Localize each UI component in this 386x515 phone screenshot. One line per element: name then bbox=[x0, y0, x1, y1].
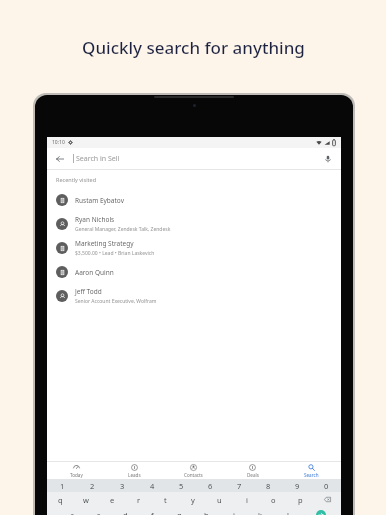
staticText: d bbox=[123, 510, 128, 515]
button[interactable]: Ryan Nichols bbox=[47, 212, 341, 236]
button[interactable]: 8 bbox=[254, 479, 283, 492]
staticText: Deals bbox=[247, 472, 259, 478]
button[interactable]: a bbox=[59, 507, 85, 515]
button[interactable]: t bbox=[152, 492, 179, 507]
button[interactable]: Rustam Eybatov bbox=[47, 188, 341, 212]
staticText: Jeff Todd bbox=[75, 287, 102, 296]
staticText: Contacts bbox=[184, 472, 203, 478]
button[interactable]: g bbox=[166, 507, 193, 515]
staticText: o bbox=[271, 495, 276, 505]
staticText: j bbox=[233, 510, 235, 515]
button[interactable]: w bbox=[73, 492, 99, 507]
staticText: 5 bbox=[179, 481, 184, 491]
staticText: Search in Sell bbox=[76, 154, 120, 164]
staticText: r bbox=[137, 495, 141, 505]
staticText: General Manager, Zendesk Talk, Zendesk bbox=[75, 226, 171, 233]
button[interactable]: Backspace bbox=[314, 492, 341, 507]
button[interactable]: s bbox=[85, 507, 112, 515]
staticText: Quickly search for anything bbox=[82, 36, 305, 59]
button[interactable]: Marketing Strategy bbox=[47, 236, 341, 260]
staticText: $3,500.00 • Lead • Brian Laskevich bbox=[75, 250, 155, 257]
button[interactable]: e bbox=[99, 492, 125, 507]
staticText: Ryan Nichols bbox=[75, 215, 115, 224]
button[interactable]: 9 bbox=[283, 479, 312, 492]
staticText: 8 bbox=[266, 481, 271, 491]
staticText: 2 bbox=[90, 481, 95, 491]
button[interactable]: p bbox=[287, 492, 314, 507]
staticText: Marketing Strategy bbox=[75, 239, 134, 248]
button[interactable]: 5 bbox=[167, 479, 196, 492]
staticText: 7 bbox=[237, 481, 242, 491]
staticText: h bbox=[204, 510, 209, 515]
button[interactable]: 7 bbox=[225, 479, 254, 492]
button[interactable]: Search bbox=[282, 462, 341, 479]
staticText: Rustam Eybatov bbox=[75, 196, 124, 205]
staticText: Today bbox=[70, 472, 83, 478]
staticText: 4 bbox=[150, 481, 155, 491]
button[interactable]: q bbox=[47, 492, 73, 507]
staticText: 0 bbox=[324, 481, 329, 491]
button[interactable]: Search bbox=[301, 507, 341, 515]
staticText: 1 bbox=[60, 481, 65, 491]
button[interactable]: u bbox=[206, 492, 233, 507]
staticText: u bbox=[217, 495, 222, 505]
button[interactable]: Voice search bbox=[321, 152, 335, 166]
button[interactable]: Contacts bbox=[164, 462, 223, 479]
staticText: 3 bbox=[120, 481, 125, 491]
button[interactable]: 4 bbox=[137, 479, 167, 492]
staticText: 6 bbox=[208, 481, 213, 491]
button[interactable]: Today bbox=[47, 462, 105, 479]
staticText: Recently visited bbox=[56, 176, 97, 183]
staticText: 9 bbox=[295, 481, 300, 491]
button[interactable]: 6 bbox=[196, 479, 225, 492]
button[interactable]: y bbox=[179, 492, 206, 507]
staticText: q bbox=[58, 495, 63, 505]
button[interactable]: r bbox=[125, 492, 152, 507]
staticText: w bbox=[83, 495, 89, 505]
staticText: Leads bbox=[128, 472, 141, 478]
staticText: s bbox=[97, 510, 101, 515]
button[interactable]: 3 bbox=[107, 479, 137, 492]
staticText: l bbox=[287, 510, 289, 515]
staticText: a bbox=[70, 510, 75, 515]
button[interactable]: f bbox=[139, 507, 166, 515]
staticText: Search bbox=[304, 472, 319, 478]
button[interactable]: k bbox=[247, 507, 274, 515]
button[interactable]: 1 bbox=[47, 479, 77, 492]
staticText: Senior Account Executive, Wolfram bbox=[75, 298, 157, 305]
button[interactable]: Back bbox=[53, 152, 67, 166]
staticText: p bbox=[298, 495, 303, 505]
staticText: y bbox=[191, 495, 195, 505]
button[interactable]: l bbox=[274, 507, 301, 515]
staticText: g bbox=[177, 510, 182, 515]
button[interactable]: 0 bbox=[312, 479, 341, 492]
button[interactable]: h bbox=[193, 507, 220, 515]
staticText: e bbox=[110, 495, 115, 505]
button[interactable]: Leads bbox=[105, 462, 164, 479]
staticText: f bbox=[151, 510, 154, 515]
button[interactable]: 2 bbox=[77, 479, 107, 492]
button[interactable]: i bbox=[233, 492, 260, 507]
staticText: t bbox=[164, 495, 167, 505]
button[interactable]: d bbox=[112, 507, 139, 515]
button[interactable]: Jeff Todd bbox=[47, 284, 341, 308]
button[interactable]: j bbox=[220, 507, 247, 515]
staticText: Aaron Quinn bbox=[75, 268, 114, 277]
button[interactable]: Deals bbox=[223, 462, 282, 479]
staticText: k bbox=[258, 510, 263, 515]
button[interactable]: Aaron Quinn bbox=[47, 260, 341, 284]
button[interactable]: o bbox=[260, 492, 287, 507]
staticText: i bbox=[246, 495, 248, 505]
staticText: 10:10 bbox=[52, 139, 65, 146]
